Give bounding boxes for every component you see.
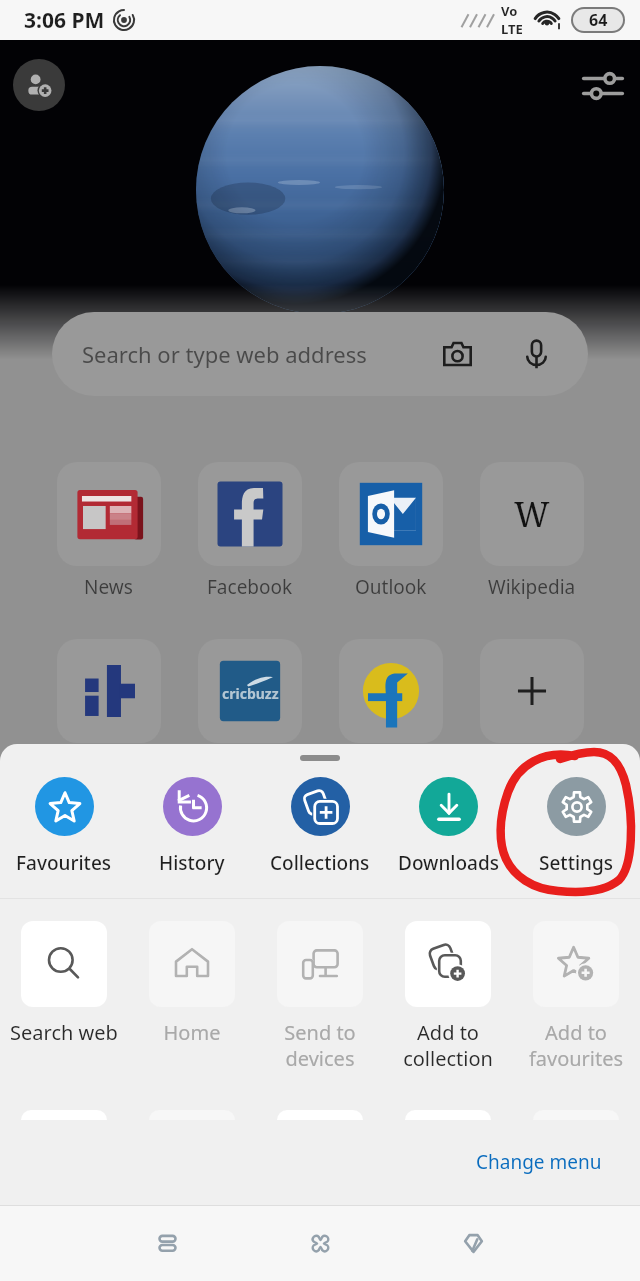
staticText: Change menu — [476, 1149, 602, 1175]
button[interactable]: Recent apps — [90, 1206, 244, 1281]
staticText: LTE — [501, 20, 523, 38]
button[interactable]: Search web — [0, 921, 128, 1046]
button[interactable]: News — [38, 462, 179, 600]
staticText: Send to devices — [256, 1019, 384, 1072]
button[interactable]: Add to favourites — [512, 921, 640, 1072]
button[interactable]: Customize — [574, 57, 632, 115]
button[interactable]: Change menu — [466, 1141, 612, 1183]
staticText: Add to collection — [384, 1019, 512, 1072]
staticText: Settings — [539, 850, 613, 876]
button[interactable] — [461, 639, 602, 743]
staticText: 3:06 PM — [24, 6, 105, 35]
button[interactable]: Downloads — [384, 777, 512, 876]
staticText: Outlook — [355, 574, 427, 600]
staticText: cricbuzz — [222, 684, 279, 703]
button[interactable]: Home — [128, 921, 256, 1046]
button[interactable]: Outlook — [320, 462, 461, 600]
button[interactable]: Settings — [512, 777, 640, 876]
button[interactable]: Send to devices — [256, 921, 384, 1072]
staticText: Vo — [501, 2, 518, 20]
button[interactable]: History — [128, 777, 256, 876]
button[interactable]: W — [461, 462, 602, 600]
staticText: Facebook — [207, 574, 293, 600]
staticText: Favourites — [16, 850, 112, 876]
button[interactable]: Voice search — [510, 328, 562, 380]
button[interactable]: Search or type web address — [52, 312, 588, 396]
staticText: Search web — [0, 1019, 128, 1046]
button[interactable]: Home — [244, 1206, 397, 1281]
button[interactable]: Collections — [256, 777, 384, 876]
staticText: W — [514, 491, 550, 537]
staticText: Add to favourites — [512, 1019, 640, 1072]
staticText: Collections — [270, 850, 370, 876]
button[interactable] — [38, 639, 179, 743]
button[interactable] — [320, 639, 461, 743]
button[interactable]: Facebook — [179, 462, 320, 600]
staticText: Wikipedia — [488, 574, 576, 600]
button[interactable]: cricbuzz — [179, 639, 320, 743]
button[interactable]: Back — [397, 1206, 550, 1281]
button[interactable]: Profile — [13, 59, 65, 111]
staticText: Home — [128, 1019, 256, 1046]
button[interactable]: Add to collection — [384, 921, 512, 1072]
button[interactable]: Search with camera — [431, 328, 483, 380]
staticText: News — [84, 574, 133, 600]
staticText: History — [159, 850, 225, 876]
staticText: Search or type web address — [82, 339, 367, 369]
staticText: Downloads — [398, 850, 499, 876]
button[interactable]: Favourites — [0, 777, 128, 876]
staticText: 64 — [589, 9, 608, 31]
